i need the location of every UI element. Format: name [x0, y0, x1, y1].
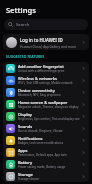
staticText: Battery	[18, 160, 33, 165]
other: Open	[81, 40, 86, 45]
other: Open	[81, 174, 86, 179]
other: Open	[81, 138, 86, 143]
staticText: Wi-Fi, Tech SIM settings, Mobile network	[18, 81, 73, 85]
button[interactable]: Storage	[3, 170, 89, 182]
staticText: Home screen & wallpaper	[18, 100, 68, 105]
button[interactable]: Home screen & wallpaper	[3, 98, 89, 110]
button[interactable]: Notifications	[3, 134, 89, 146]
button[interactable]: Search	[4, 19, 88, 30]
staticText: Do not disturb, Ringtone, Vibrate	[18, 129, 63, 133]
other: Open	[81, 102, 86, 107]
staticText: Badges, Lock screen notifications	[18, 141, 64, 145]
other: Open	[81, 78, 86, 83]
button[interactable]: Add another fingerprint	[3, 62, 89, 74]
other: Open	[81, 162, 86, 167]
button[interactable]: Display	[3, 110, 89, 122]
staticText: Storage cleaner	[18, 177, 40, 181]
staticText: Apps	[18, 148, 28, 153]
staticText: Permissions, Default apps, App twin	[18, 153, 67, 157]
button[interactable]: Log in to HUAWEI ID	[3, 34, 89, 50]
button[interactable]: Battery	[3, 158, 89, 170]
staticText: Wireless & networks	[18, 76, 57, 81]
staticText: Settings	[6, 5, 36, 15]
staticText: Huawei Cloud, AppGallery and more	[20, 44, 77, 48]
staticText: Notifications	[18, 136, 43, 141]
other: Open	[81, 126, 86, 131]
staticText: Power saving mode, Battery usage	[18, 165, 66, 169]
staticText: Brightness, Eye comfort, Text and displa…	[18, 117, 80, 121]
staticText: Device connectivity	[18, 88, 55, 93]
button[interactable]: Device connectivity	[3, 86, 89, 98]
staticText: SUGGESTED FEATURES	[6, 54, 45, 59]
staticText: Log in to HUAWEI ID	[20, 37, 63, 43]
staticText: Add another fingerprint	[18, 64, 64, 69]
button[interactable]: Wireless & networks	[3, 74, 89, 86]
other: Open	[81, 114, 86, 119]
staticText: Magazine unlock, Themes, always on displ…	[18, 105, 79, 109]
staticText: Display	[18, 112, 32, 117]
button[interactable]: Sounds	[3, 122, 89, 134]
staticText: Search	[16, 22, 30, 28]
other: Open	[81, 90, 86, 95]
other: Open	[81, 150, 86, 155]
staticText: Storage	[18, 172, 33, 177]
button[interactable]: Apps	[3, 146, 89, 158]
staticText: Bluetooth, NFC, Easy projection	[18, 93, 61, 97]
staticText: Sounds	[18, 124, 33, 129]
other: Open	[81, 66, 86, 71]
staticText: Unlock with a different fingerprint	[18, 69, 65, 73]
